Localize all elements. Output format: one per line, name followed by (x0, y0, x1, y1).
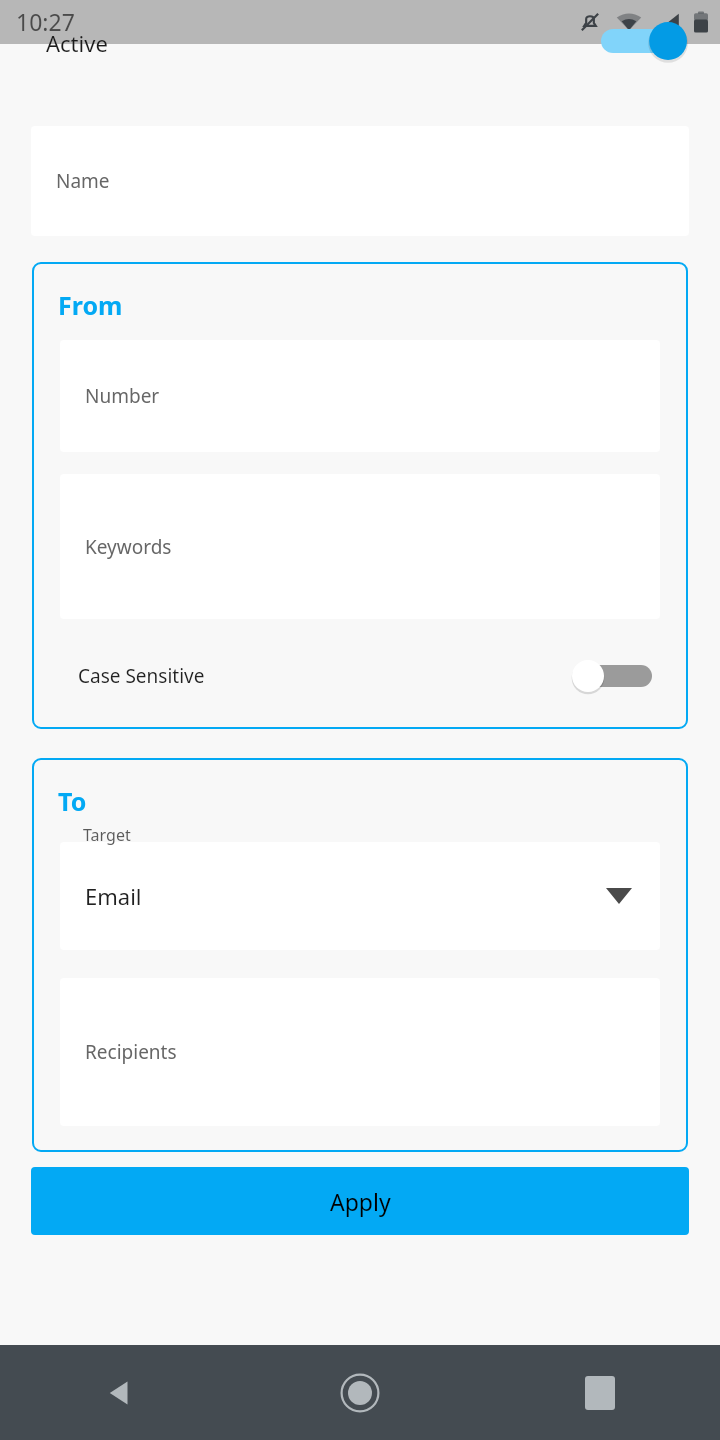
button[interactable]: Name (31, 126, 689, 236)
button[interactable]: Recent apps (480, 1345, 720, 1440)
staticText: Active (46, 28, 108, 58)
button[interactable]: Email (60, 842, 660, 950)
other: Case Sensitive switch (572, 656, 652, 696)
staticText: Keywords (85, 534, 172, 560)
staticText: Number (85, 383, 160, 409)
button[interactable]: Back (0, 1345, 240, 1440)
staticText: Email (85, 881, 142, 911)
button[interactable]: Apply (31, 1167, 689, 1235)
staticText: Case Sensitive (78, 663, 205, 689)
button[interactable]: Keywords (60, 474, 660, 619)
staticText: Apply (330, 1186, 391, 1217)
button[interactable]: Case Sensitive (60, 651, 660, 701)
staticText: Recipients (85, 1039, 177, 1065)
staticText: Name (56, 168, 110, 194)
staticText: To (58, 784, 87, 818)
button[interactable]: Number (60, 340, 660, 452)
staticText: From (58, 288, 123, 322)
button[interactable]: Active toggle (601, 19, 687, 63)
staticText: 10:27 (16, 6, 75, 37)
button[interactable]: Home (240, 1345, 480, 1440)
button[interactable]: Recipients (60, 978, 660, 1126)
staticText: Target (83, 824, 131, 846)
